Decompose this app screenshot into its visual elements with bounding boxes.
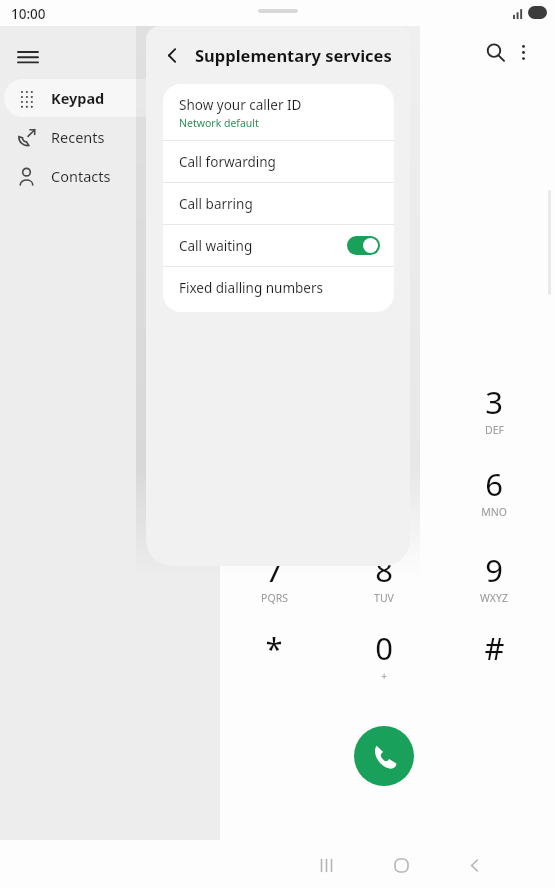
button[interactable]: 3 bbox=[450, 381, 538, 441]
staticText: 0 bbox=[375, 627, 393, 669]
button[interactable]: 5 bbox=[340, 463, 428, 523]
staticText: Supplementary services bbox=[195, 44, 392, 66]
staticText: Network default bbox=[179, 116, 259, 130]
staticText: + bbox=[381, 669, 387, 683]
button[interactable]: Fixed dialling numbers bbox=[163, 267, 394, 308]
staticText: MNO bbox=[481, 505, 507, 519]
staticText: PQRS bbox=[261, 591, 288, 605]
staticText: DEF bbox=[485, 423, 504, 437]
staticText: Recents bbox=[51, 127, 105, 147]
staticText: 9 bbox=[485, 549, 503, 591]
button[interactable]: Call forwarding bbox=[163, 141, 394, 182]
button[interactable]: Home bbox=[383, 847, 419, 883]
button[interactable]: 7 bbox=[230, 549, 318, 609]
button[interactable]: More options bbox=[505, 34, 541, 70]
staticText: * bbox=[265, 627, 283, 669]
staticText: 3 bbox=[485, 381, 503, 423]
button[interactable]: 2 bbox=[340, 381, 428, 441]
staticText: 8 bbox=[375, 549, 393, 591]
button[interactable]: Open navigation menu bbox=[6, 35, 50, 79]
staticText: Show your caller ID bbox=[179, 96, 302, 114]
button[interactable]: Back bbox=[456, 847, 492, 883]
button[interactable]: Back bbox=[156, 39, 188, 71]
button[interactable]: * bbox=[230, 627, 318, 687]
staticText: Contacts bbox=[51, 166, 111, 186]
button[interactable]: # bbox=[450, 627, 538, 687]
button[interactable]: 8 bbox=[340, 549, 428, 609]
button[interactable]: 9 bbox=[450, 549, 538, 609]
staticText: 10:00 bbox=[11, 5, 46, 23]
staticText: WXYZ bbox=[480, 591, 508, 605]
button[interactable]: Show your caller ID bbox=[163, 84, 394, 140]
button[interactable]: Search bbox=[477, 34, 513, 70]
button[interactable]: Contacts bbox=[4, 157, 216, 195]
staticText: 6 bbox=[485, 463, 503, 505]
button[interactable]: 0 bbox=[340, 627, 428, 687]
staticText: TUV bbox=[374, 591, 394, 605]
button[interactable]: Call waiting bbox=[163, 225, 394, 266]
button[interactable]: Recents bbox=[4, 118, 216, 156]
staticText: # bbox=[484, 627, 505, 669]
staticText: Call waiting bbox=[179, 237, 253, 255]
button[interactable]: Keypad bbox=[4, 79, 216, 117]
staticText: Call forwarding bbox=[179, 153, 276, 171]
staticText: 7 bbox=[265, 549, 283, 591]
button[interactable]: Call waiting, on bbox=[347, 236, 380, 255]
button[interactable]: Recent apps bbox=[308, 847, 344, 883]
button[interactable]: Call bbox=[354, 726, 414, 786]
staticText: Keypad bbox=[51, 88, 105, 108]
button[interactable]: Call barring bbox=[163, 183, 394, 224]
button[interactable]: 6 bbox=[450, 463, 538, 523]
staticText: Fixed dialling numbers bbox=[179, 279, 324, 297]
staticText: Call barring bbox=[179, 195, 253, 213]
